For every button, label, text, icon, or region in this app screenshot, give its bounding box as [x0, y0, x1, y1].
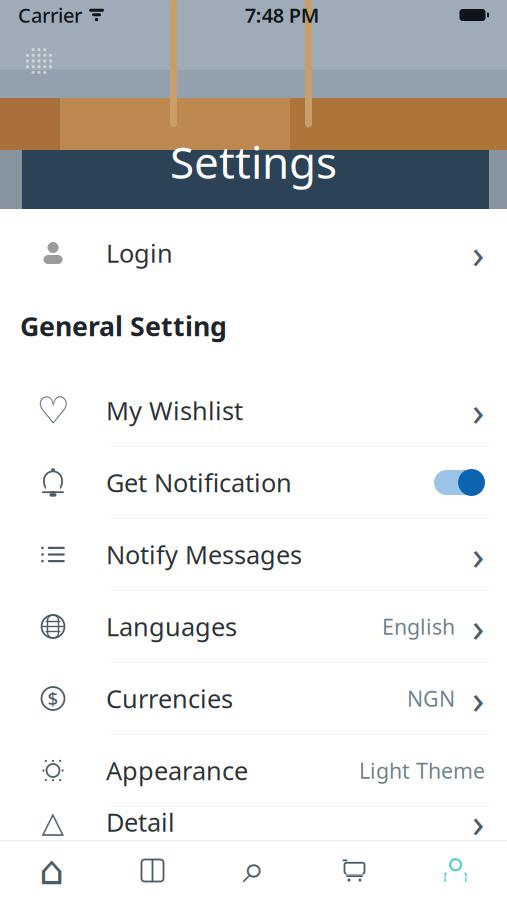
staticText: Light Theme — [359, 756, 485, 785]
staticText: › — [472, 672, 484, 725]
staticText: Appearance — [106, 754, 248, 787]
button[interactable]: $ — [0, 663, 507, 734]
button[interactable]: △ — [0, 807, 507, 837]
staticText: Login — [106, 236, 173, 270]
staticText: › — [472, 795, 484, 848]
staticText: $ — [47, 686, 58, 711]
button[interactable]: Home — [1, 841, 102, 900]
button[interactable]: Search — [203, 841, 304, 900]
button[interactable]: Get Notification — [433, 468, 485, 496]
button[interactable]: Categories — [102, 841, 203, 900]
button[interactable]: Languages — [0, 591, 507, 662]
button[interactable]: Get Notification — [0, 447, 507, 518]
staticText: Currencies — [106, 682, 233, 715]
staticText: ⌂ — [39, 848, 64, 893]
staticText: NGN — [407, 684, 455, 713]
staticText: Notify Messages — [106, 538, 302, 571]
button[interactable]: Cart — [304, 841, 405, 900]
staticText: Detail — [106, 805, 175, 839]
staticText: › — [472, 528, 484, 581]
staticText: ⌕ — [242, 851, 264, 890]
staticText: My Wishlist — [106, 394, 243, 427]
staticText: › — [472, 600, 484, 653]
staticText: △ — [41, 805, 64, 839]
staticText: ♡ — [36, 389, 69, 432]
button[interactable]: Notify Messages — [0, 519, 507, 590]
staticText: › — [472, 384, 484, 437]
staticText: General Setting — [20, 308, 227, 344]
staticText: Get Notification — [106, 466, 292, 499]
staticText: English — [382, 612, 455, 641]
staticText: 7:48 PM — [245, 2, 320, 28]
button[interactable]: ♡ — [0, 375, 507, 446]
staticText: › — [472, 226, 484, 279]
staticText: Languages — [106, 610, 237, 643]
button[interactable]: Account — [405, 841, 506, 900]
button[interactable]: Login — [0, 209, 507, 297]
staticText: Settings — [170, 133, 337, 191]
button[interactable]: Appearance — [0, 735, 507, 806]
staticText: Carrier — [18, 2, 82, 28]
